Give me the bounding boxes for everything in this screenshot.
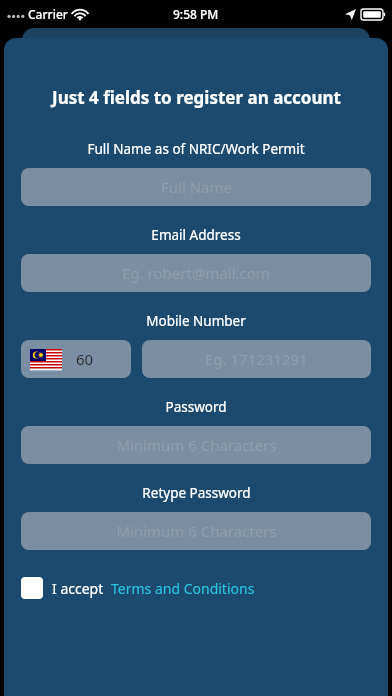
button[interactable]: Select country code: [21, 340, 131, 378]
staticText: Eg. 171231291: [205, 349, 308, 369]
button[interactable]: Eg. robert@mail.com: [21, 254, 371, 292]
staticText: I accept: [52, 579, 104, 598]
other: Accept terms checkbox: [21, 577, 43, 599]
button[interactable]: Terms and Conditions: [111, 579, 255, 598]
button[interactable]: Full Name: [21, 168, 371, 206]
staticText: Minimum 6 Characters: [116, 521, 277, 541]
button[interactable]: Eg. 171231291: [142, 340, 371, 378]
staticText: Retype Password: [142, 484, 251, 502]
staticText: Minimum 6 Characters: [116, 435, 277, 455]
staticText: 9:58 PM: [173, 6, 219, 22]
staticText: Carrier: [28, 6, 68, 22]
staticText: Mobile Number: [146, 312, 246, 330]
staticText: Password: [165, 398, 227, 416]
button[interactable]: Minimum 6 Characters: [21, 426, 371, 464]
button[interactable]: Minimum 6 Characters: [21, 512, 371, 550]
staticText: Just 4 fields to register an account: [52, 86, 341, 109]
staticText: Eg. robert@mail.com: [122, 263, 270, 283]
button[interactable]: Accept terms checkbox: [21, 577, 371, 599]
staticText: Full Name: [161, 177, 232, 197]
staticText: Email Address: [151, 226, 241, 244]
staticText: Full Name as of NRIC/Work Permit: [87, 140, 305, 158]
staticText: 60: [76, 349, 94, 369]
